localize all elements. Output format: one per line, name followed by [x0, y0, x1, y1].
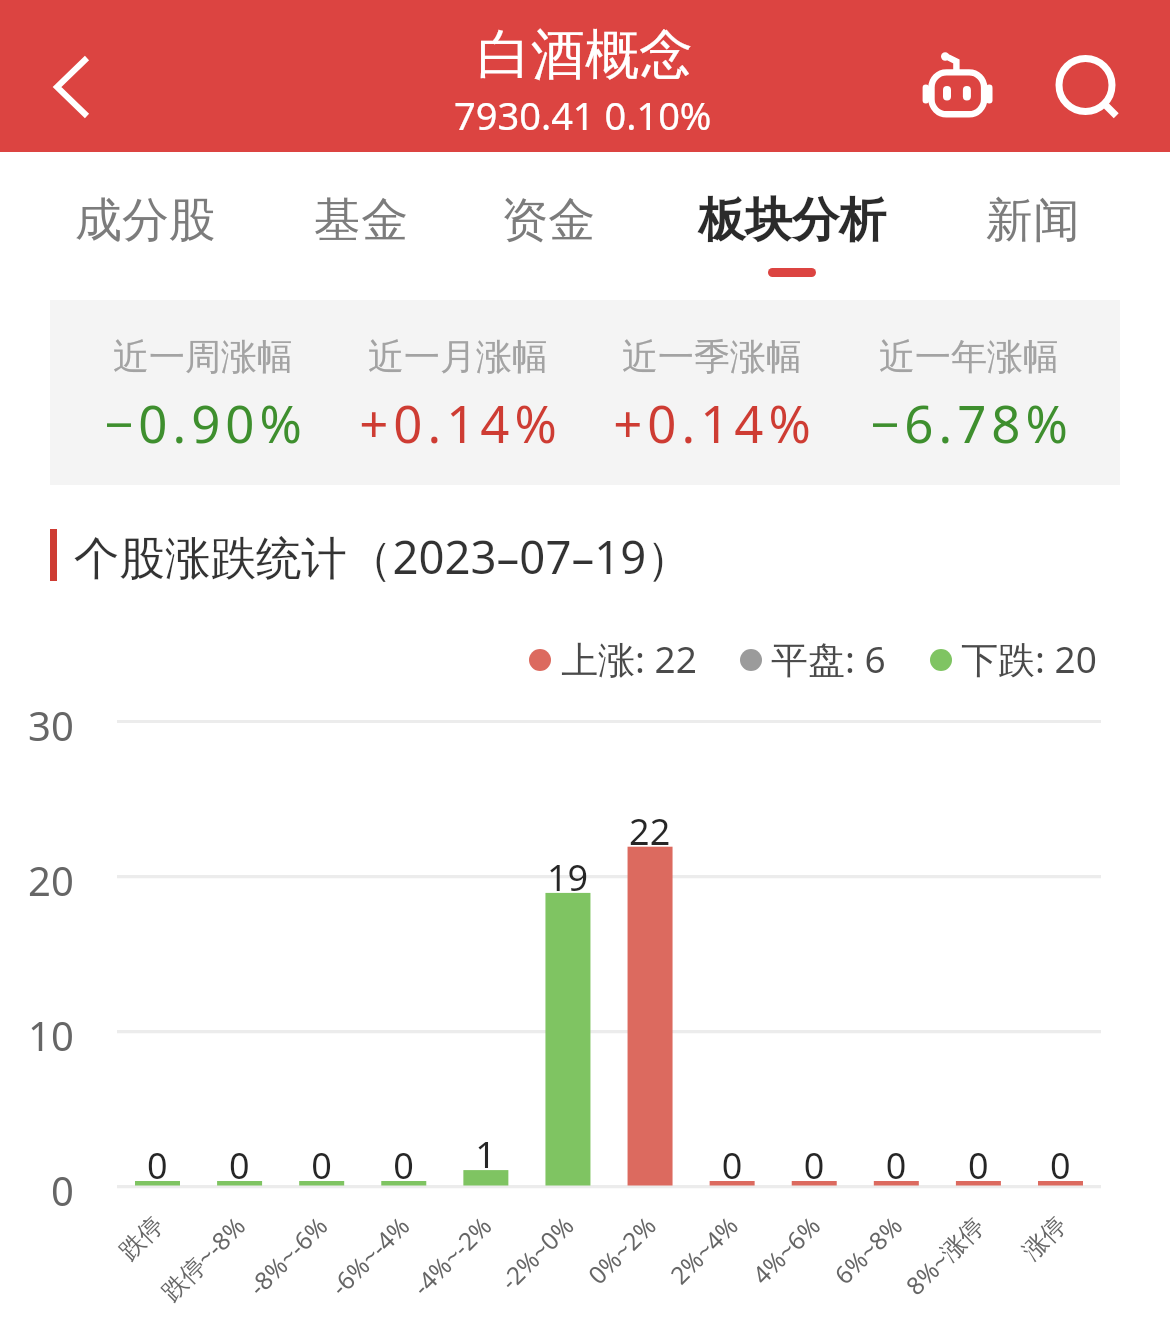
staticText: 个股涨跌统计（2023–07–19） — [74, 525, 692, 587]
staticText: 近一年涨幅 — [879, 334, 1059, 379]
button[interactable]: 个股涨跌统计（2023–07–19） — [74, 525, 692, 587]
button[interactable]: 平盘: 6 — [771, 633, 886, 684]
button[interactable]: Back — [28, 43, 116, 131]
staticText: −6.78% — [870, 388, 1073, 457]
staticText: 板块分析 — [698, 191, 886, 250]
staticText: −0.90% — [104, 388, 307, 457]
button[interactable]: 资金 — [423, 191, 673, 291]
staticText: 成分股 — [75, 191, 216, 250]
staticText: 近一周涨幅 — [113, 334, 293, 379]
staticText: 基金 — [314, 191, 408, 250]
staticText: +0.14% — [359, 388, 562, 457]
button[interactable]: 近一季涨幅 — [571, 334, 851, 459]
button[interactable]: 近一年涨幅 — [828, 334, 1108, 459]
button[interactable]: 新闻 — [908, 191, 1158, 291]
button[interactable]: 基金 — [236, 191, 486, 291]
button[interactable]: 近一周涨幅 — [62, 334, 342, 459]
button[interactable]: Search — [1041, 45, 1129, 133]
staticText: 近一季涨幅 — [622, 334, 802, 379]
staticText: 新闻 — [986, 191, 1080, 250]
staticText: +0.14% — [613, 388, 816, 457]
staticText: 下跌: 20 — [961, 633, 1097, 684]
staticText: 7930.41 0.10% — [454, 89, 712, 141]
staticText: 上涨: 22 — [561, 633, 697, 684]
staticText: 平盘: 6 — [771, 633, 886, 684]
button[interactable]: 上涨: 22 — [561, 633, 697, 684]
button[interactable]: 下跌: 20 — [961, 633, 1097, 684]
button[interactable]: 近一月涨幅 — [317, 334, 597, 459]
staticText: 近一月涨幅 — [368, 334, 548, 379]
button[interactable]: AI assistant — [913, 48, 1001, 136]
staticText: 资金 — [501, 191, 595, 250]
button[interactable]: 成分股 — [20, 191, 270, 291]
staticText: 白酒概念 — [477, 21, 693, 89]
button[interactable]: 板块分析 — [667, 191, 917, 291]
